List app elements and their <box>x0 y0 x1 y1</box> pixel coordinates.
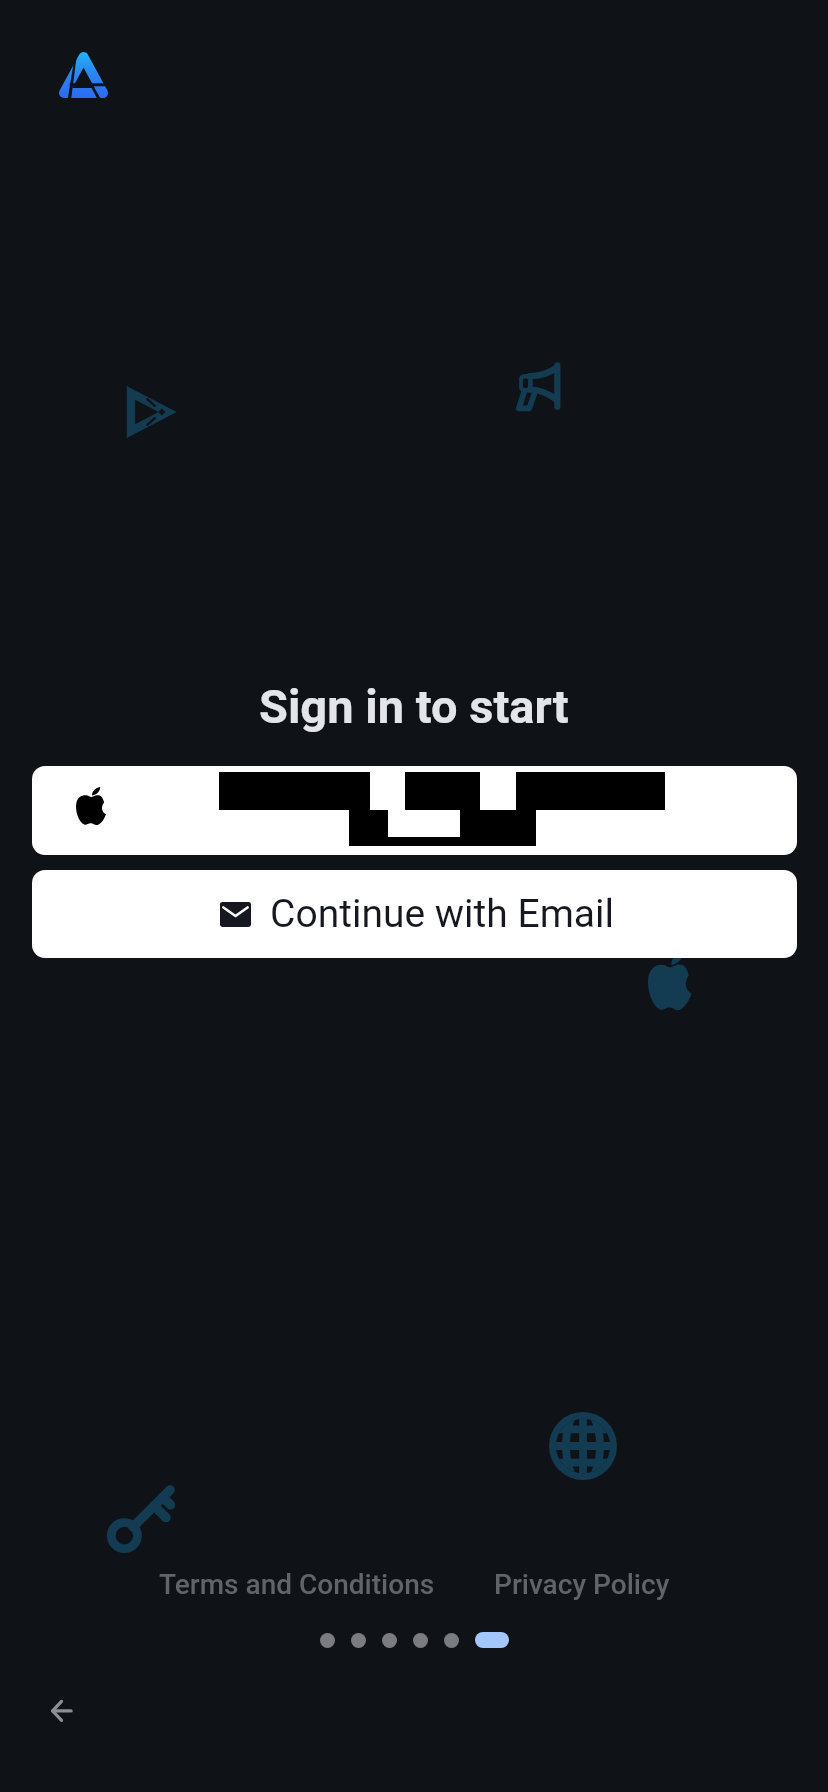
button[interactable]: Go to page 2 <box>351 1633 366 1648</box>
button[interactable]: Continue with Apple <box>32 766 797 855</box>
button[interactable]: Privacy Policy <box>494 1568 670 1601</box>
button[interactable]: Go to page 5 <box>444 1633 459 1648</box>
button[interactable]: Go to page 4 <box>413 1633 428 1648</box>
button[interactable]: Go to page 1 <box>320 1633 335 1648</box>
button[interactable]: Go to page 3 <box>382 1633 397 1648</box>
button[interactable]: Continue with Email <box>32 870 797 958</box>
button[interactable]: Back <box>38 1687 86 1735</box>
staticText: Continue with Email <box>270 891 615 937</box>
button[interactable]: Current page <box>475 1632 509 1648</box>
staticText: Sign in to start <box>259 679 569 734</box>
button[interactable]: Terms and Conditions <box>159 1568 435 1601</box>
staticText: Terms and Conditions <box>159 1568 435 1601</box>
staticText: Privacy Policy <box>494 1568 670 1601</box>
